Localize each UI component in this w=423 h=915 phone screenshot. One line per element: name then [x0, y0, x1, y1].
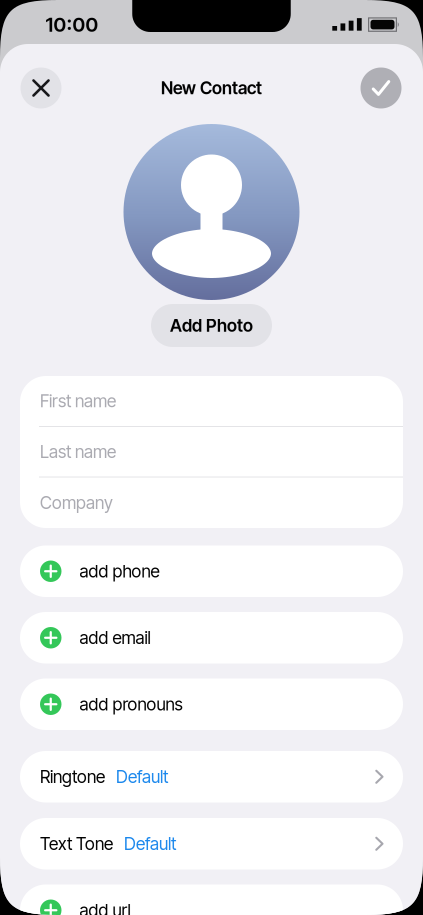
staticText: add pronouns [79, 694, 182, 714]
button[interactable]: Company [20, 477, 403, 528]
staticText: add url [79, 900, 130, 915]
button[interactable]: First name [20, 376, 403, 426]
button[interactable]: add email [20, 612, 403, 663]
button[interactable]: add url [20, 884, 403, 915]
button[interactable]: Add Photo [151, 304, 272, 347]
button[interactable]: add pronouns [20, 678, 403, 730]
staticText: Add Photo [170, 315, 253, 336]
staticText: Text Tone [40, 833, 113, 854]
button[interactable]: Text Tone [20, 818, 403, 869]
staticText: Last name [40, 441, 116, 462]
staticText: Company [40, 492, 113, 513]
staticText: Ringtone [40, 766, 105, 787]
staticText: First name [40, 391, 116, 411]
staticText: Default [124, 833, 176, 854]
staticText: add email [79, 627, 150, 648]
staticText: 10:00 [45, 13, 98, 36]
button[interactable]: Last name [20, 427, 403, 476]
button[interactable]: add phone [20, 545, 403, 597]
staticText: Default [116, 766, 168, 787]
staticText: add phone [79, 561, 159, 581]
button[interactable]: Done [360, 67, 401, 108]
button[interactable]: Ringtone [20, 751, 403, 802]
button[interactable]: Cancel [20, 67, 61, 108]
staticText: New Contact [161, 78, 262, 98]
